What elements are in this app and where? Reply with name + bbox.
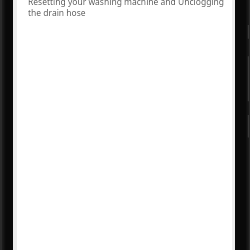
button[interactable]: Resetting your washing machine and Unclo… (28, 0, 226, 18)
staticText: Resetting your washing machine and Unclo… (28, 0, 226, 18)
